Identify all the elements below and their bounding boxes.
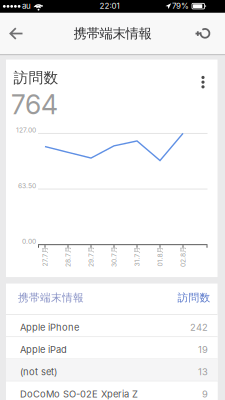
button[interactable]: 訪問数: [177, 291, 210, 304]
staticText: 9: [202, 388, 208, 399]
staticText: 01.8月: [150, 252, 170, 261]
staticText: 19: [198, 344, 208, 355]
staticText: 30.7月: [103, 252, 124, 261]
staticText: 訪問数: [177, 291, 210, 304]
staticText: 27.7月: [35, 252, 55, 261]
staticText: 13: [198, 366, 208, 377]
button[interactable]: Apple iPhone: [6, 315, 217, 336]
staticText: 31.7月: [127, 252, 147, 261]
staticText: Apple iPad: [20, 344, 67, 355]
staticText: 22:01: [99, 1, 119, 10]
button[interactable]: Apple iPad: [6, 337, 217, 358]
staticText: 29.7月: [80, 252, 101, 261]
staticText: 02.8月: [172, 252, 193, 261]
button[interactable]: More options: [6, 59, 217, 277]
staticText: 127.00: [16, 126, 36, 134]
button[interactable]: DoCoMo SO-02E Xperia Z: [6, 382, 217, 400]
staticText: 携帯端末情報: [73, 25, 151, 42]
staticText: 764: [11, 89, 58, 120]
button[interactable]: Refresh: [188, 13, 218, 54]
button[interactable]: Back: [0, 13, 30, 54]
button[interactable]: (not set): [6, 359, 217, 381]
staticText: DoCoMo SO-02E Xperia Z: [20, 388, 138, 399]
staticText: (not set): [20, 366, 57, 377]
staticText: au: [22, 1, 31, 10]
staticText: 242: [190, 322, 208, 333]
staticText: 63.50: [18, 182, 36, 190]
staticText: 訪問数: [13, 69, 58, 87]
staticText: 28.7月: [57, 252, 78, 261]
staticText: 79%: [172, 1, 189, 10]
staticText: Apple iPhone: [20, 322, 79, 333]
staticText: 0.00: [22, 237, 36, 245]
staticText: 携帯端末情報: [18, 291, 84, 304]
